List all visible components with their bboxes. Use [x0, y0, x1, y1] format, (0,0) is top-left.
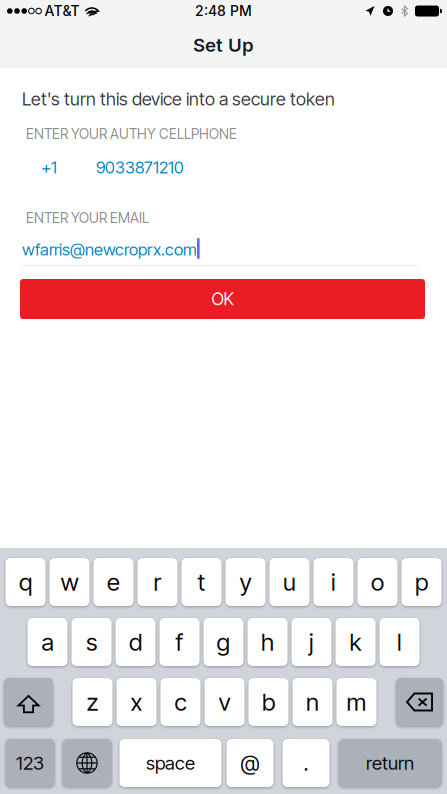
button[interactable]: l [379, 618, 419, 666]
button[interactable]: o [357, 558, 397, 606]
staticText: Set Up [193, 34, 254, 56]
staticText: m [346, 687, 366, 716]
button[interactable]: space [119, 739, 221, 787]
staticText: j [309, 627, 314, 656]
button[interactable]: y [225, 558, 265, 606]
staticText: g [216, 627, 230, 656]
staticText: ENTER YOUR AUTHY CELLPHONE [26, 125, 237, 142]
staticText: i [331, 567, 336, 596]
button[interactable]: g [203, 618, 243, 666]
button[interactable]: t [181, 558, 221, 606]
staticText: c [174, 687, 186, 716]
button[interactable]: u [269, 558, 309, 606]
staticText: 123 [16, 752, 44, 774]
staticText: d [129, 627, 142, 656]
staticText: +1 [41, 157, 57, 178]
button[interactable]: Shift [4, 678, 53, 726]
staticText: z [86, 687, 98, 716]
staticText: l [397, 627, 402, 656]
staticText: o [371, 567, 384, 596]
staticText: s [86, 627, 97, 656]
staticText: k [349, 627, 361, 656]
staticText: 9033871210 [96, 157, 184, 178]
staticText: Let's turn this device into a secure tok… [22, 88, 335, 110]
button[interactable]: n [292, 678, 332, 726]
button[interactable]: v [204, 678, 244, 726]
staticText: OK [211, 288, 233, 309]
button[interactable]: d [115, 618, 155, 666]
button[interactable]: OK [20, 279, 425, 319]
button[interactable]: x [116, 678, 156, 726]
staticText: w [60, 567, 78, 596]
button[interactable]: Delete [396, 678, 443, 726]
staticText: t [197, 567, 205, 596]
button[interactable]: p [401, 558, 441, 606]
button[interactable]: return [338, 739, 441, 787]
button[interactable]: z [72, 678, 112, 726]
button[interactable]: Next keyboard [62, 739, 111, 787]
staticText: f [175, 627, 183, 656]
staticText: r [153, 567, 161, 596]
staticText: p [415, 567, 428, 596]
staticText: b [262, 687, 275, 716]
button[interactable]: w [49, 558, 89, 606]
button[interactable]: f [159, 618, 199, 666]
staticText: 2:48 PM [195, 2, 252, 19]
staticText: return [366, 752, 414, 774]
button[interactable]: m [336, 678, 376, 726]
button[interactable]: q [5, 558, 45, 606]
button[interactable]: . [282, 739, 329, 787]
button[interactable]: b [248, 678, 288, 726]
staticText: y [239, 567, 251, 596]
staticText: q [19, 567, 32, 596]
button[interactable]: a [27, 618, 67, 666]
button[interactable]: @ [226, 739, 273, 787]
button[interactable]: h [247, 618, 287, 666]
staticText: @ [240, 750, 259, 776]
staticText: space [146, 752, 195, 774]
button[interactable]: s [71, 618, 111, 666]
button[interactable]: 123 [5, 739, 54, 787]
staticText: AT&T [44, 2, 79, 19]
button[interactable]: e [93, 558, 133, 606]
staticText: n [306, 687, 319, 716]
button[interactable]: r [137, 558, 177, 606]
staticText: h [261, 627, 274, 656]
button[interactable]: k [335, 618, 375, 666]
staticText: e [107, 567, 120, 596]
button[interactable]: i [313, 558, 353, 606]
staticText: wfarris@newcroprx.com [22, 239, 197, 260]
staticText: x [130, 687, 142, 716]
button[interactable]: j [291, 618, 331, 666]
staticText: . [303, 750, 308, 776]
button[interactable]: c [160, 678, 200, 726]
staticText: v [218, 687, 230, 716]
staticText: u [283, 567, 296, 596]
staticText: ENTER YOUR EMAIL [26, 209, 149, 226]
staticText: a [41, 627, 53, 656]
